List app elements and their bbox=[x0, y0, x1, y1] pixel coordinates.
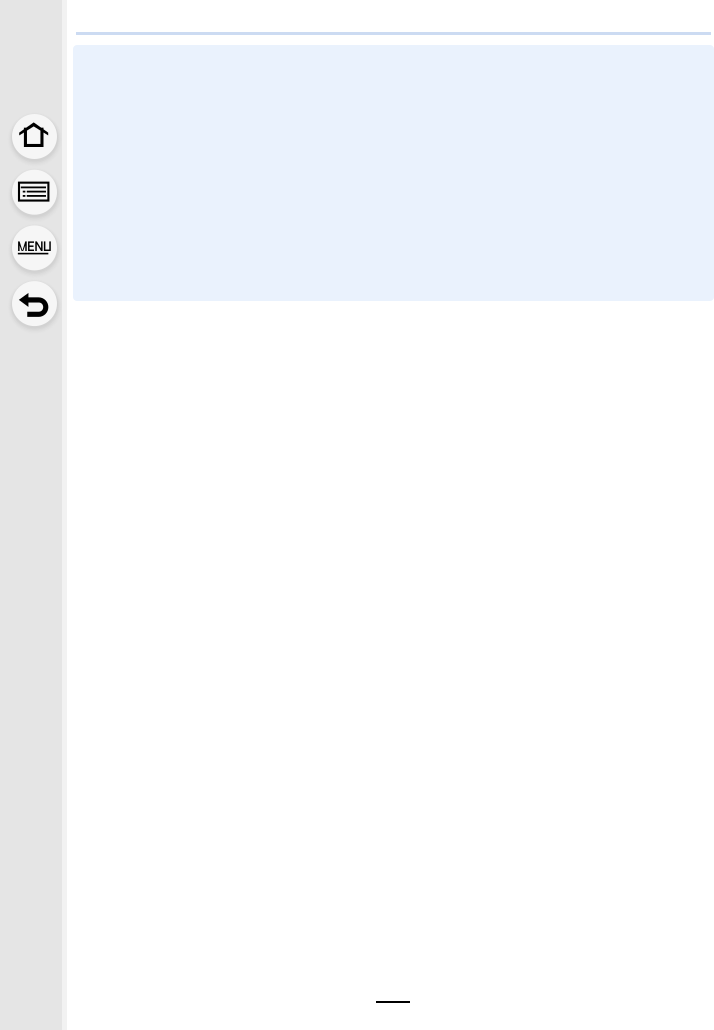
button[interactable]: Menu bbox=[8, 220, 60, 276]
button[interactable]: Back bbox=[8, 276, 60, 332]
button[interactable]: Home bbox=[8, 108, 60, 164]
button[interactable]: Contents bbox=[8, 164, 60, 220]
